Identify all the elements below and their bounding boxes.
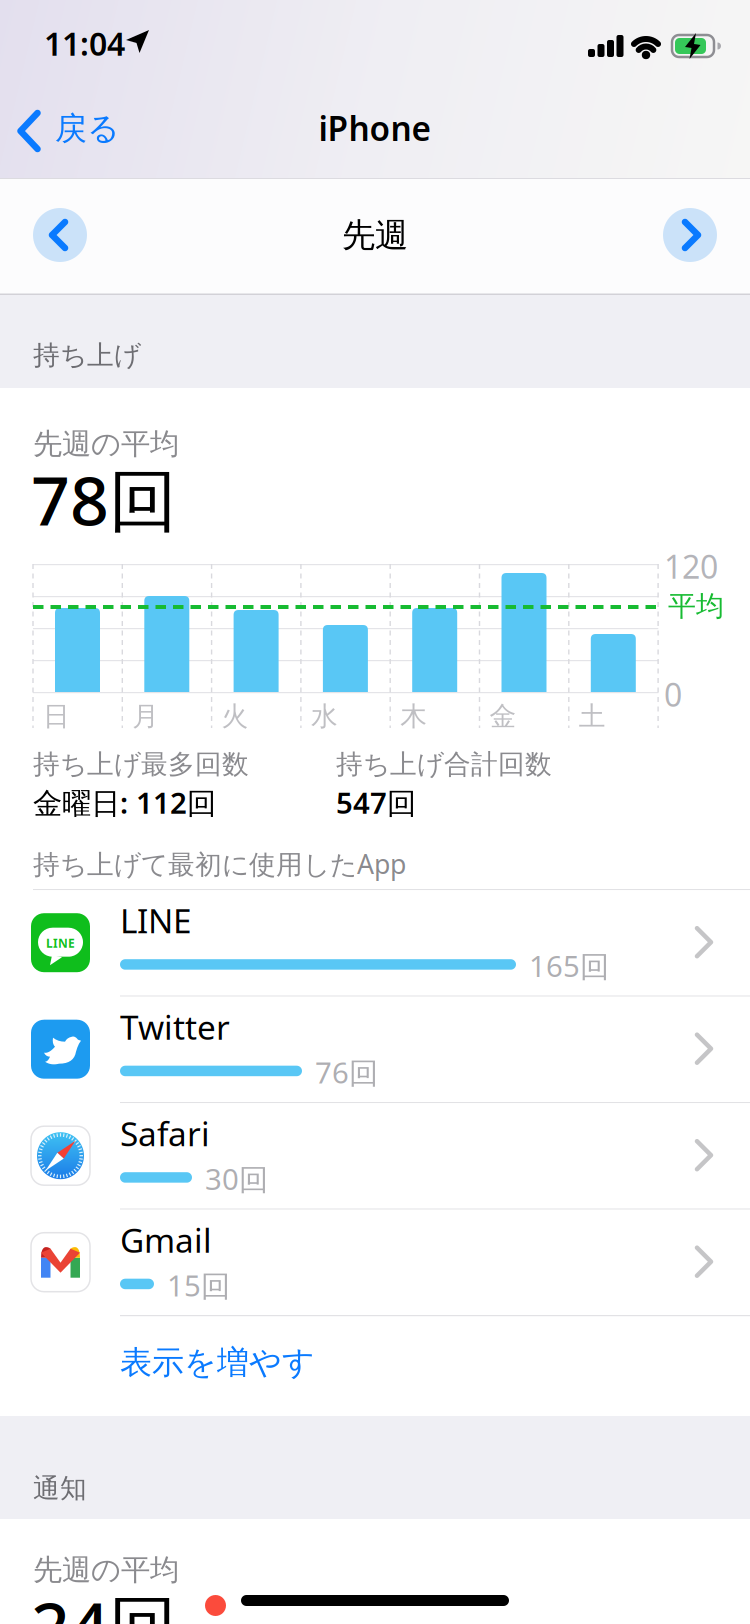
button[interactable]: 前の週 [33, 208, 87, 262]
staticText: Gmail [120, 1218, 212, 1262]
staticText: 持ち上げ合計回数 [336, 748, 552, 781]
staticText: 120 [664, 545, 718, 587]
button[interactable]: Twitter [0, 997, 750, 1103]
staticText: 先週の平均 [33, 426, 179, 462]
staticText: Twitter [120, 1005, 230, 1049]
staticText: 30回 [205, 1159, 268, 1198]
staticText: 165回 [529, 946, 609, 985]
staticText: 持ち上げ [33, 339, 141, 372]
staticText: 平均 [668, 589, 724, 623]
staticText: 金 [489, 700, 516, 733]
staticText: 戻る [55, 109, 120, 148]
staticText: LINE [46, 935, 75, 951]
staticText: 通知 [33, 1472, 87, 1505]
staticText: 水 [311, 700, 338, 733]
button[interactable]: LINE [0, 890, 750, 997]
button[interactable]: 次の週 [663, 208, 717, 262]
staticText: 表示を増やす [120, 1343, 315, 1382]
staticText: 土 [579, 700, 606, 733]
staticText: 24回 [31, 1580, 177, 1624]
button[interactable]: 表示を増やす [120, 1343, 400, 1403]
button[interactable]: Gmail [0, 1210, 750, 1316]
staticText: 先週 [342, 215, 408, 256]
staticText: 火 [222, 700, 249, 733]
staticText: 日 [43, 700, 70, 733]
staticText: 15回 [167, 1266, 230, 1305]
staticText: LINE [120, 898, 192, 942]
staticText: iPhone [318, 106, 431, 150]
staticText: 持ち上げて最初に使用したApp [33, 846, 406, 881]
staticText: 0 [664, 673, 682, 715]
staticText: 78回 [31, 454, 177, 544]
staticText: Safari [120, 1111, 210, 1155]
staticText: 金曜日: 112回 [33, 783, 216, 822]
button[interactable]: 戻る [0, 65, 130, 145]
staticText: 月 [132, 700, 159, 733]
button[interactable]: Safari [0, 1103, 750, 1210]
staticText: 木 [400, 700, 427, 733]
staticText: 先週の平均 [33, 1552, 179, 1588]
staticText: 547回 [336, 783, 416, 822]
staticText: 76回 [315, 1053, 378, 1092]
staticText: 持ち上げ最多回数 [33, 748, 249, 781]
staticText: 11:04 [44, 22, 125, 64]
